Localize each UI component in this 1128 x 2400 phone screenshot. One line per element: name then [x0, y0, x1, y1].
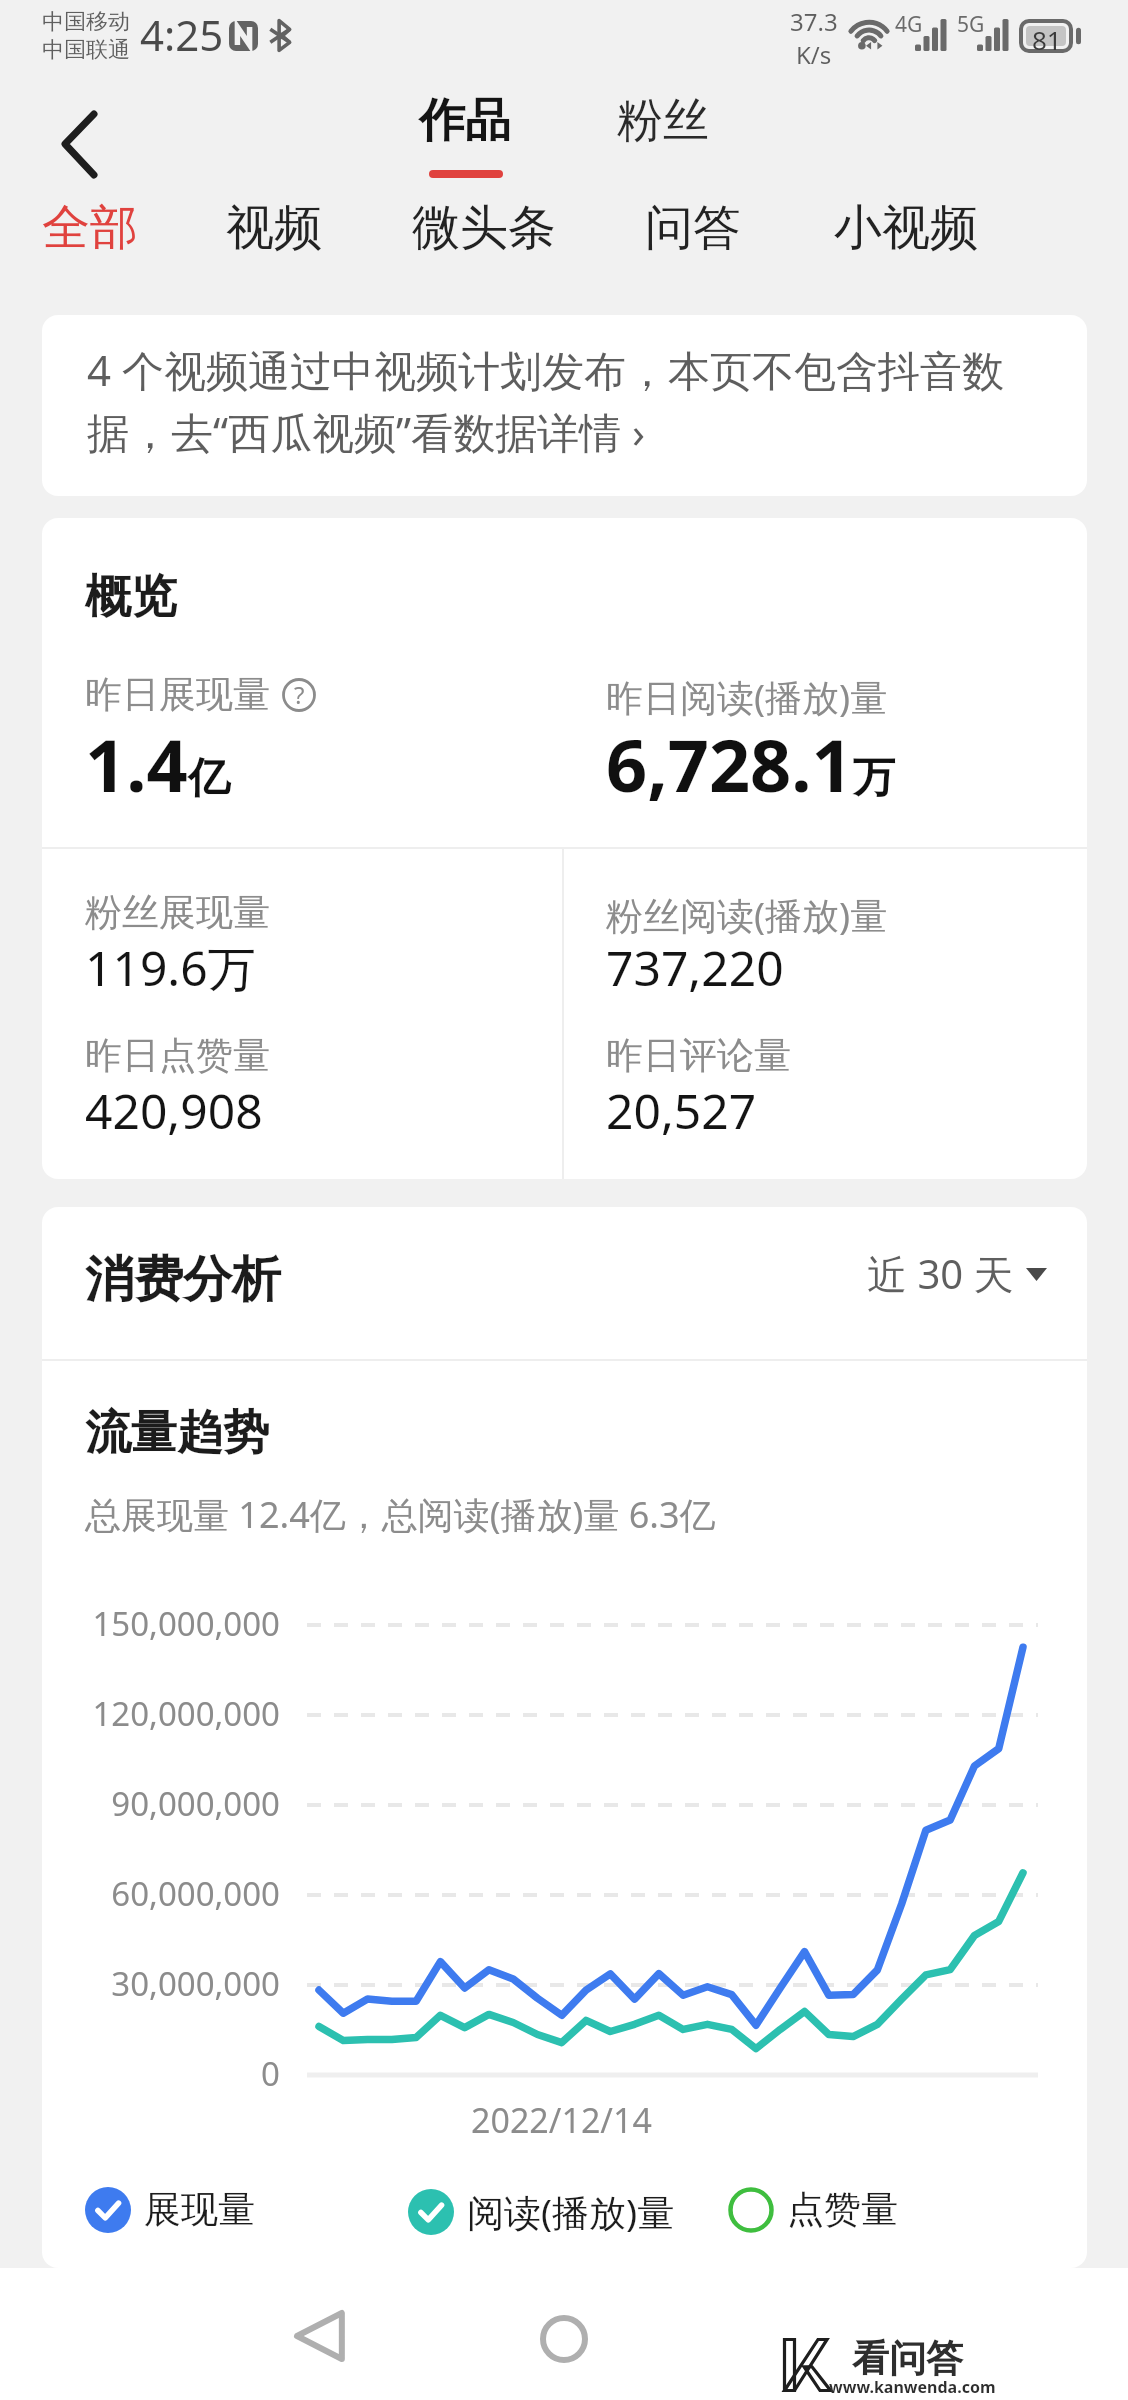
- staticText: 粉丝: [617, 92, 709, 150]
- staticText: 81: [1032, 22, 1062, 57]
- staticText: 全部: [42, 198, 138, 258]
- button[interactable]: 近 30 天: [867, 1246, 1047, 1301]
- staticText: 视频: [226, 198, 322, 258]
- button[interactable]: 粉丝: [617, 92, 709, 150]
- staticText: 粉丝展现量: [85, 889, 270, 936]
- staticText: 30,000,000: [42, 1961, 280, 2006]
- staticText: 微头条: [412, 198, 556, 258]
- button[interactable]: 全部: [42, 198, 138, 258]
- staticText: 亿: [188, 752, 230, 805]
- staticText: 20,527: [606, 1078, 757, 1143]
- staticText: 5G: [957, 10, 985, 39]
- button[interactable]: 展现量: [85, 2186, 255, 2233]
- staticText: 4 个视频通过中视频计划发布，本页不包含抖音数据，去“西瓜视频”看数据详情 ›: [87, 341, 1009, 461]
- staticText: 4G: [895, 10, 923, 39]
- staticText: 737,220: [606, 935, 784, 1000]
- staticText: 150,000,000: [42, 1601, 280, 1646]
- button[interactable]: 问答: [645, 198, 741, 258]
- staticText: 120,000,000: [42, 1691, 280, 1736]
- staticText: K/s: [796, 38, 832, 71]
- button[interactable]: 点赞量: [728, 2186, 898, 2233]
- staticText: www.kanwenda.com: [829, 2376, 996, 2398]
- staticText: 4:25: [140, 6, 224, 63]
- button[interactable]: 阅读(播放)量: [408, 2186, 675, 2237]
- staticText: 看问答: [852, 2335, 963, 2382]
- button[interactable]: 作品: [419, 92, 511, 150]
- staticText: 中国移动: [42, 8, 130, 36]
- button[interactable]: 4 个视频通过中视频计划发布，本页不包含抖音数据，去“西瓜视频”看数据详情 ›: [42, 315, 1087, 496]
- button[interactable]: 视频: [226, 198, 322, 258]
- staticText: 昨日展现量: [85, 671, 270, 718]
- staticText: 概览: [85, 568, 177, 626]
- staticText: 2022/12/14: [471, 2097, 652, 2143]
- staticText: 昨日阅读(播放)量: [606, 671, 888, 722]
- staticText: 流量趋势: [85, 1404, 269, 1462]
- staticText: 总展现量 12.4亿，总阅读(播放)量 6.3亿: [85, 1490, 716, 1539]
- staticText: 近 30 天: [867, 1246, 1014, 1301]
- staticText: 420,908: [85, 1078, 263, 1143]
- staticText: ?: [294, 678, 305, 711]
- staticText: 0: [42, 2051, 280, 2096]
- staticText: 1.4: [85, 715, 188, 813]
- staticText: 昨日点赞量: [85, 1032, 270, 1079]
- staticText: 37.3: [790, 5, 838, 38]
- staticText: 6,728.1: [606, 715, 853, 813]
- staticText: 点赞量: [787, 2186, 898, 2233]
- staticText: 展现量: [144, 2186, 255, 2233]
- button[interactable]: Back: [34, 98, 96, 160]
- button[interactable]: 微头条: [412, 198, 556, 258]
- staticText: 60,000,000: [42, 1871, 280, 1916]
- button[interactable]: Home: [540, 2315, 588, 2363]
- button[interactable]: Back: [294, 2310, 346, 2362]
- staticText: 问答: [645, 198, 741, 258]
- staticText: 中国联通: [42, 36, 130, 64]
- button[interactable]: Help: [282, 678, 316, 712]
- staticText: 作品: [419, 92, 511, 150]
- staticText: 90,000,000: [42, 1781, 280, 1826]
- staticText: 消费分析: [85, 1249, 281, 1311]
- staticText: 阅读(播放)量: [467, 2186, 675, 2237]
- staticText: 119.6万: [85, 935, 256, 1001]
- staticText: 粉丝阅读(播放)量: [606, 889, 888, 940]
- staticText: 万: [853, 752, 895, 805]
- staticText: 昨日评论量: [606, 1032, 791, 1079]
- button[interactable]: 小视频: [834, 198, 978, 258]
- staticText: 小视频: [834, 198, 978, 258]
